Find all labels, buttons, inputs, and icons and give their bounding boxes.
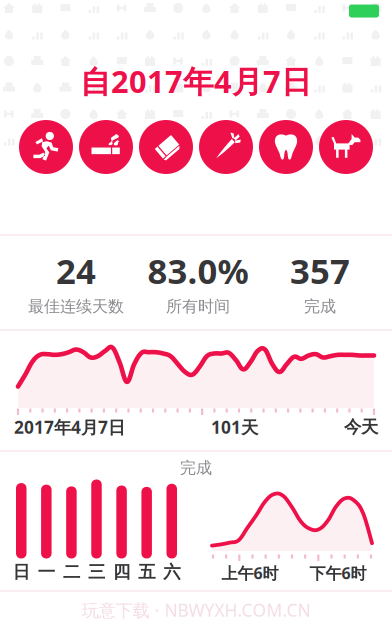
- staticText: 2017年4月7日: [14, 415, 125, 438]
- button[interactable]: 戒烟: [79, 120, 133, 174]
- staticText: 101天: [211, 415, 258, 438]
- button[interactable]: 遛狗: [319, 120, 373, 174]
- staticText: 357: [290, 248, 350, 294]
- staticText: 所有时间: [166, 297, 230, 316]
- staticText: 24: [56, 248, 96, 294]
- staticText: 自2017年4月7日: [80, 61, 312, 101]
- staticText: 完成: [304, 297, 336, 316]
- button[interactable]: 运动: [19, 120, 73, 174]
- button[interactable]: 阅读: [139, 120, 193, 174]
- staticText: 玩意下载 · NBWYXH.COM.CN: [81, 598, 310, 621]
- staticText: 一: [38, 561, 55, 583]
- staticText: 最佳连续天数: [28, 297, 124, 316]
- staticText: 83.0%: [147, 248, 248, 294]
- staticText: 今天: [344, 416, 378, 438]
- staticText: 二: [63, 561, 80, 583]
- staticText: 三: [88, 561, 105, 583]
- staticText: 下午6时: [309, 562, 366, 584]
- staticText: 四: [113, 561, 130, 583]
- button[interactable]: 饮食: [199, 120, 253, 174]
- staticText: 六: [163, 561, 180, 583]
- staticText: 上午6时: [221, 562, 278, 584]
- staticText: 完成: [180, 458, 212, 478]
- staticText: 日: [13, 561, 30, 583]
- staticText: 五: [138, 561, 155, 583]
- button[interactable]: 刷牙: [259, 120, 313, 174]
